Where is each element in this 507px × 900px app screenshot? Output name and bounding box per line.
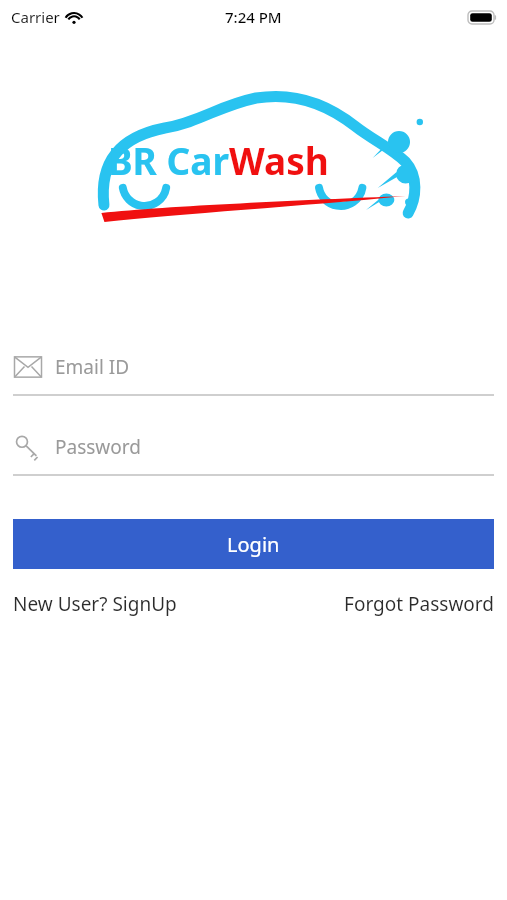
button[interactable]: New User? SignUp: [13, 588, 177, 620]
other: Email ID: [13, 354, 43, 380]
staticText: BR Car: [108, 135, 229, 185]
staticText: Login: [227, 531, 280, 558]
button[interactable]: Password: [0, 432, 507, 476]
button[interactable]: Forgot Password: [344, 588, 494, 620]
staticText: Email ID: [55, 354, 130, 380]
button[interactable]: Email ID: [0, 352, 507, 396]
other: Password: [13, 434, 43, 460]
staticText: Password: [55, 434, 141, 460]
staticText: Carrier: [11, 7, 60, 27]
staticText: Wash: [229, 135, 329, 185]
staticText: 7:24 PM: [225, 7, 282, 27]
button[interactable]: Login: [13, 519, 494, 569]
